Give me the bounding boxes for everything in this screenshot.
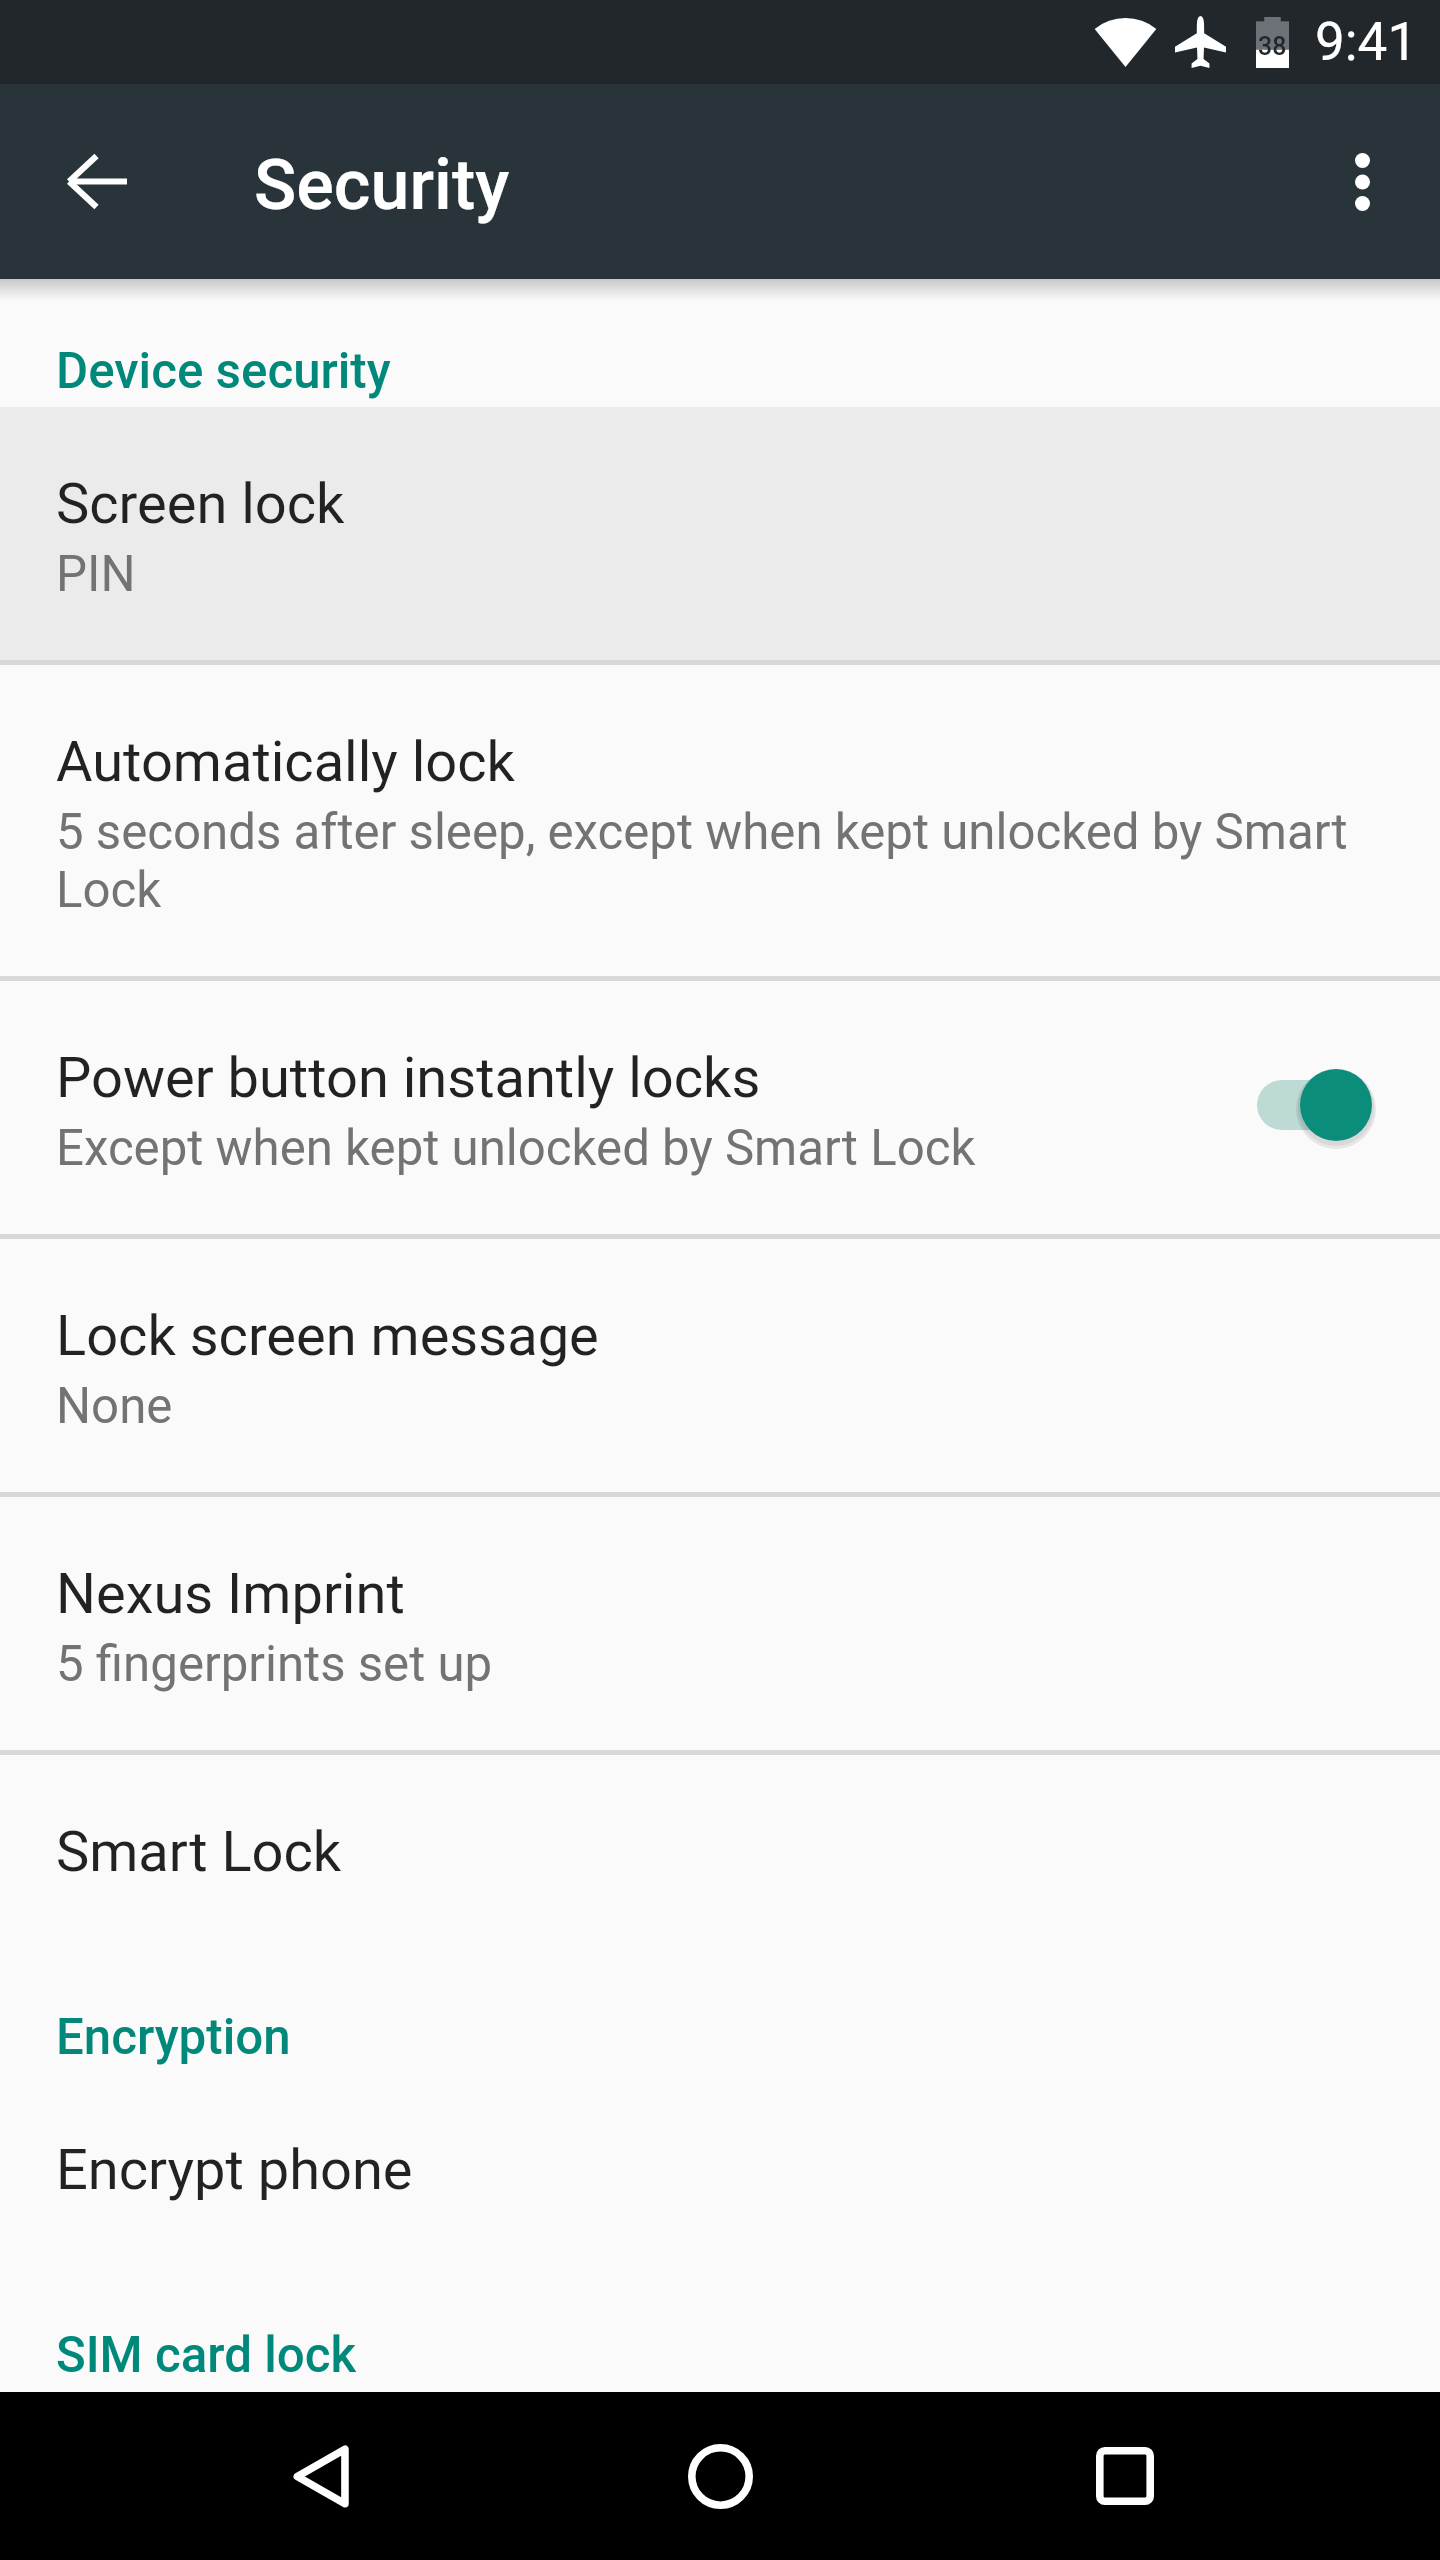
button[interactable]: Screen lock (0, 407, 1440, 660)
button[interactable]: Nexus Imprint (0, 1497, 1440, 1750)
button[interactable]: Home (625, 2392, 815, 2560)
staticText: Smart Lock (56, 1819, 342, 1885)
staticText: 5 seconds after sleep, except when kept … (56, 803, 1372, 919)
staticText: Screen lock (56, 471, 345, 537)
button[interactable]: Back (225, 2392, 415, 2560)
staticText: Device security (56, 342, 391, 400)
staticText: 38 (1258, 32, 1287, 61)
staticText: 5 fingerprints set up (56, 1635, 493, 1693)
button[interactable]: More options (1285, 84, 1440, 279)
staticText: Power button instantly locks (56, 1045, 761, 1111)
button[interactable]: Lock screen message (0, 1239, 1440, 1492)
button[interactable]: Encrypt phone (0, 2073, 1440, 2263)
staticText: Automatically lock (56, 729, 515, 795)
button[interactable]: Navigate up (0, 84, 192, 279)
staticText: SIM card lock (56, 2326, 357, 2384)
staticText: Nexus Imprint (56, 1561, 405, 1627)
staticText: Except when kept unlocked by Smart Lock (56, 1119, 976, 1177)
staticText: None (56, 1377, 173, 1435)
button[interactable]: Power button instantly locks (0, 981, 1440, 1234)
staticText: Lock screen message (56, 1303, 599, 1369)
button[interactable]: Smart Lock (0, 1755, 1440, 1945)
staticText: Security (254, 144, 510, 226)
staticText: 9:41 (1315, 11, 1418, 73)
button[interactable]: Automatically lock (0, 665, 1440, 976)
button[interactable]: Recent apps (1030, 2392, 1220, 2560)
staticText: PIN (56, 545, 136, 603)
staticText: Encrypt phone (56, 2137, 413, 2203)
staticText: Encryption (56, 2008, 291, 2066)
